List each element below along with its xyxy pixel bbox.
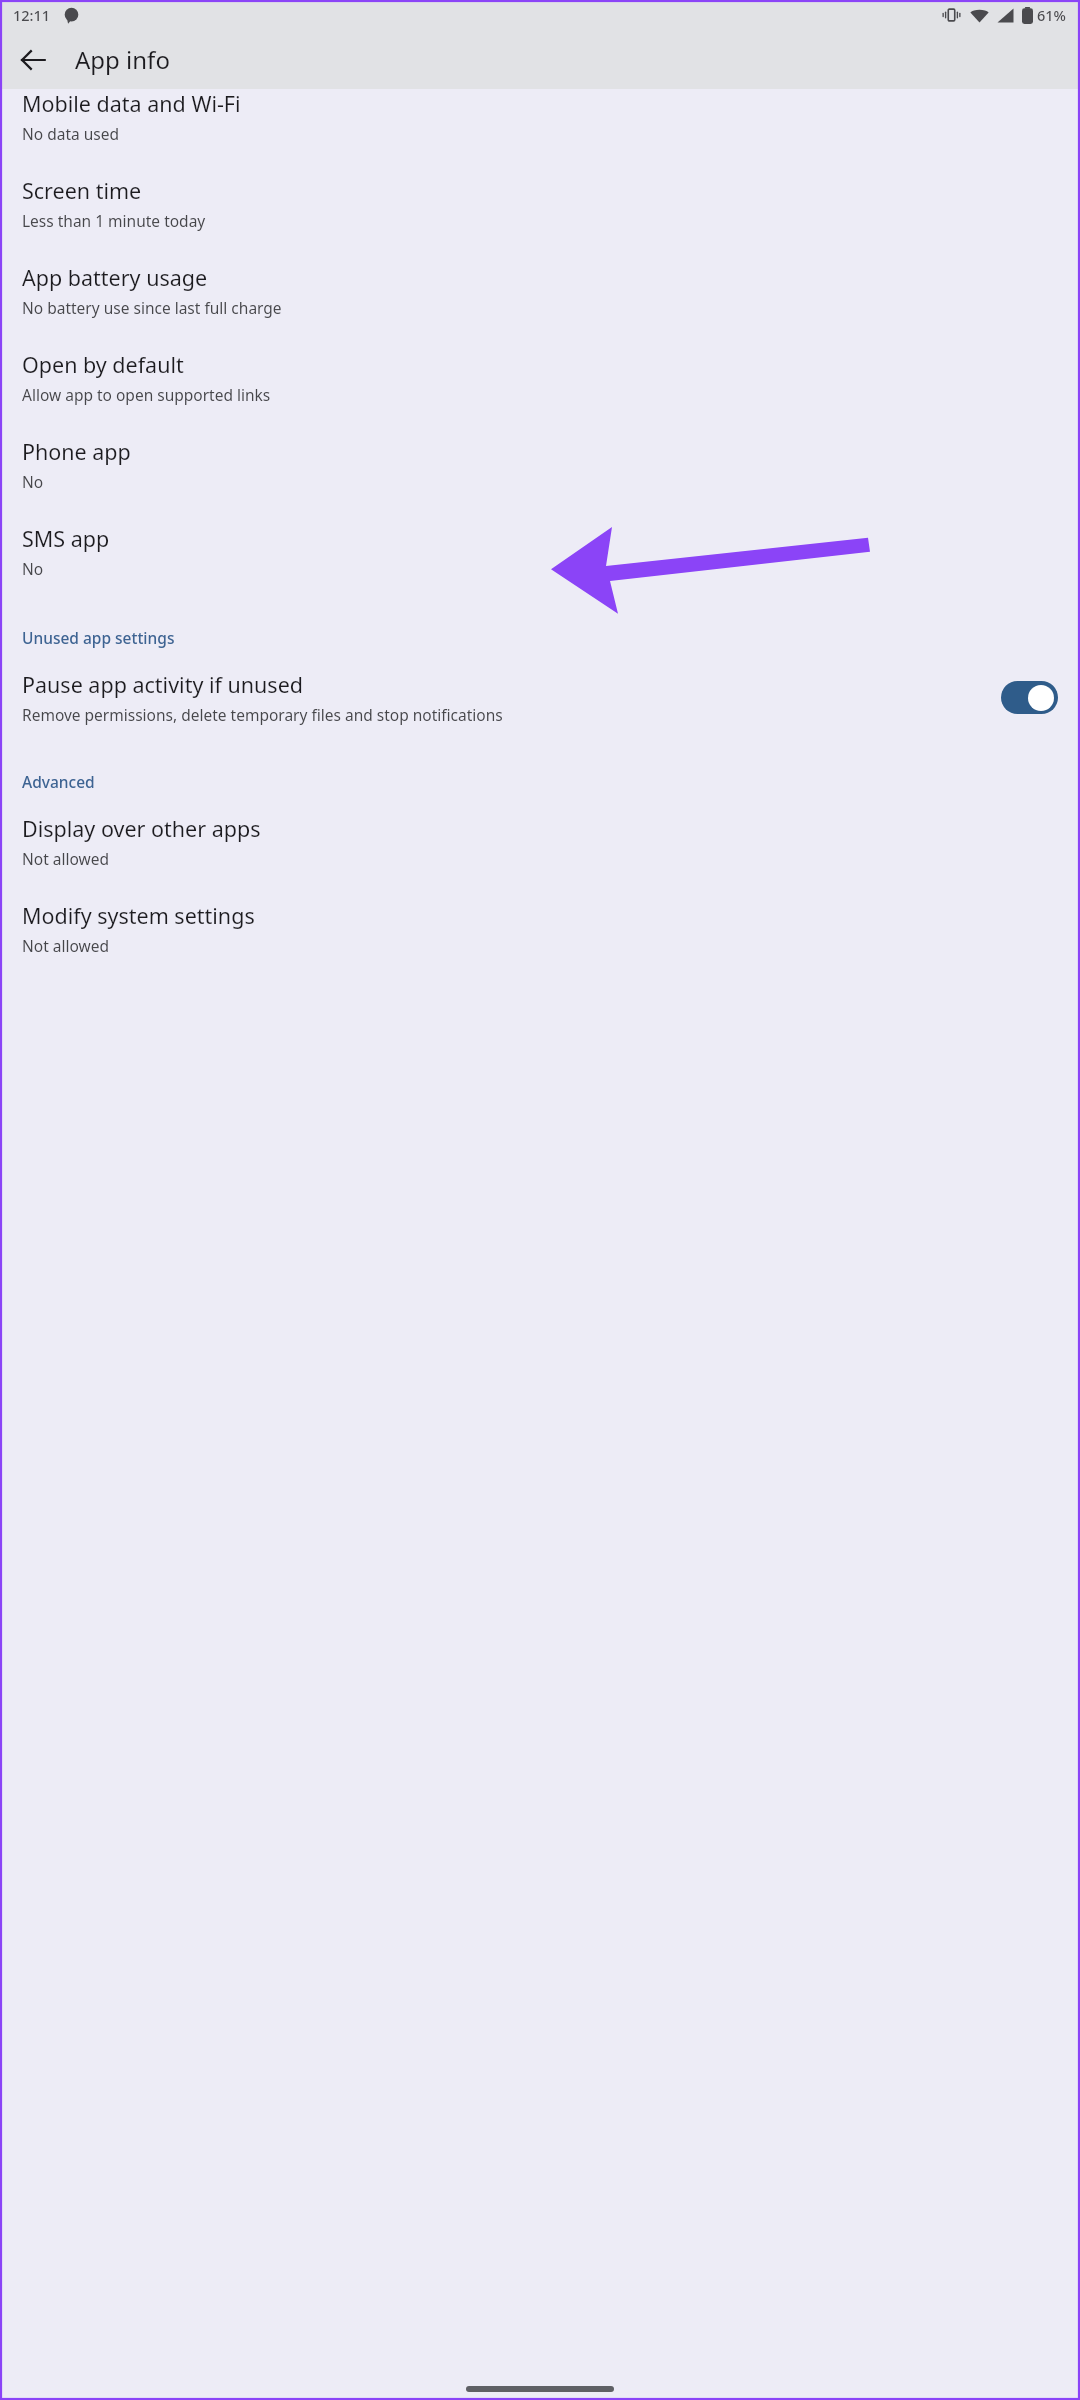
staticText: App info bbox=[75, 43, 170, 76]
button[interactable]: Screen time bbox=[0, 154, 1080, 241]
staticText: SMS app bbox=[22, 524, 110, 553]
button[interactable]: Mobile data and Wi-Fi bbox=[0, 89, 1080, 154]
staticText: Less than 1 minute today bbox=[22, 210, 206, 231]
staticText: Display over other apps bbox=[22, 814, 261, 843]
button[interactable]: Display over other apps bbox=[0, 792, 1080, 879]
staticText: Open by default bbox=[22, 350, 184, 379]
button[interactable]: Phone app bbox=[0, 415, 1080, 502]
staticText: No bbox=[22, 558, 44, 579]
staticText: Pause app activity if unused bbox=[22, 670, 303, 699]
staticText: No battery use since last full charge bbox=[22, 297, 282, 318]
staticText: App battery usage bbox=[22, 263, 208, 292]
staticText: Not allowed bbox=[22, 935, 110, 956]
staticText: No data used bbox=[22, 123, 120, 144]
staticText: 12:11 bbox=[13, 5, 51, 25]
staticText: Allow app to open supported links bbox=[22, 384, 271, 405]
staticText: No bbox=[22, 471, 44, 492]
staticText: Advanced bbox=[22, 771, 95, 792]
button[interactable]: Pause app activity toggle bbox=[1001, 681, 1058, 714]
staticText: Screen time bbox=[22, 176, 142, 205]
staticText: Unused app settings bbox=[22, 627, 175, 648]
staticText: Remove permissions, delete temporary fil… bbox=[22, 704, 503, 725]
staticText: Mobile data and Wi-Fi bbox=[22, 89, 241, 118]
button[interactable]: SMS app bbox=[0, 502, 1080, 589]
button[interactable]: Open by default bbox=[0, 328, 1080, 415]
button[interactable]: Back bbox=[9, 36, 57, 84]
staticText: 61% bbox=[1037, 5, 1066, 25]
staticText: Phone app bbox=[22, 437, 131, 466]
button[interactable]: Modify system settings bbox=[0, 879, 1080, 966]
staticText: Not allowed bbox=[22, 848, 110, 869]
button[interactable]: Pause app activity if unused bbox=[0, 648, 1080, 735]
button[interactable]: App battery usage bbox=[0, 241, 1080, 328]
staticText: Modify system settings bbox=[22, 901, 255, 930]
